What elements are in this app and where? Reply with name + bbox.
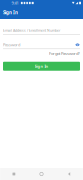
button[interactable]: Home	[28, 168, 55, 180]
button[interactable]: Back	[55, 168, 83, 180]
staticText: 9:41	[11, 0, 18, 6]
staticText: Forgot Password?	[49, 51, 80, 56]
button[interactable]: Recent apps	[0, 168, 28, 180]
button[interactable]: Show password	[75, 42, 80, 47]
button[interactable]: Sign In	[3, 62, 80, 71]
button[interactable]: Forgot Password?	[49, 51, 80, 56]
staticText: Sign In	[3, 9, 18, 16]
staticText: Email Address / Enrollment Number	[3, 28, 60, 33]
staticText: Password	[3, 42, 20, 47]
staticText: Sign In	[34, 63, 48, 69]
